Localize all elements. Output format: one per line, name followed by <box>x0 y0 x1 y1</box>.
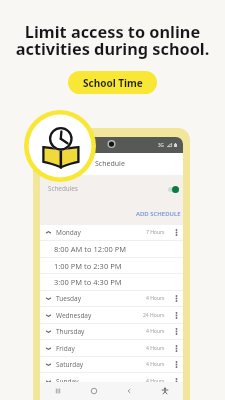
staticText: Thursday <box>56 327 85 336</box>
staticText: 4 Hours <box>146 378 165 385</box>
staticText: Friday <box>56 344 75 353</box>
staticText: School Time <box>83 76 143 90</box>
button[interactable]: Home <box>88 385 100 397</box>
button[interactable]: More options <box>172 360 181 369</box>
button[interactable]: More options <box>172 294 181 303</box>
button[interactable]: More options <box>172 344 181 353</box>
staticText: 4 Hours <box>146 345 165 352</box>
button[interactable]: Saturday <box>40 357 183 372</box>
staticText: Sunday <box>56 377 79 386</box>
button[interactable]: 8:00 AM to 12:00 PM <box>40 241 183 257</box>
staticText: 3:00 PM to 4:30 PM <box>54 277 122 287</box>
button[interactable]: ADD SCHEDULE <box>136 210 181 218</box>
button[interactable]: Thursday <box>40 324 183 339</box>
button[interactable]: Sunday <box>40 373 183 389</box>
staticText: 3G <box>158 142 164 148</box>
staticText: 8:00 AM to 12:00 PM <box>54 244 127 254</box>
button[interactable]: Recents <box>52 385 64 397</box>
staticText: 24 Hours <box>143 312 165 319</box>
staticText: 4 Hours <box>146 361 165 368</box>
button[interactable]: Tuesday <box>40 291 183 306</box>
button[interactable]: 3:00 PM to 4:30 PM <box>40 274 183 290</box>
button[interactable]: Accessibility <box>159 385 171 397</box>
staticText: Tuesday <box>56 294 82 303</box>
staticText: Schedules <box>48 184 78 193</box>
button[interactable]: More options <box>172 377 181 386</box>
button[interactable]: More options <box>172 327 181 336</box>
button[interactable]: 1:00 PM to 2:30 PM <box>40 258 183 273</box>
button[interactable]: More options <box>172 228 181 237</box>
button[interactable]: Schedules toggle <box>168 186 179 193</box>
staticText: 7 Hours <box>146 229 165 236</box>
button[interactable]: Wednesday <box>40 307 183 323</box>
staticText: 4 Hours <box>146 328 165 335</box>
staticText: Monday <box>56 228 81 237</box>
staticText: 4 Hours <box>146 295 165 302</box>
staticText: Wednesday <box>56 311 92 320</box>
staticText: Saturday <box>56 360 84 369</box>
staticText: Schedule <box>95 159 125 169</box>
button[interactable]: School Time <box>68 71 157 94</box>
staticText: 1:00 PM to 2:30 PM <box>54 261 122 271</box>
button[interactable]: Friday <box>40 340 183 356</box>
button[interactable]: More options <box>172 311 181 320</box>
staticText: Limit access to online activities during… <box>0 21 225 60</box>
button[interactable]: Monday <box>40 225 183 240</box>
button[interactable]: Back <box>123 385 135 397</box>
